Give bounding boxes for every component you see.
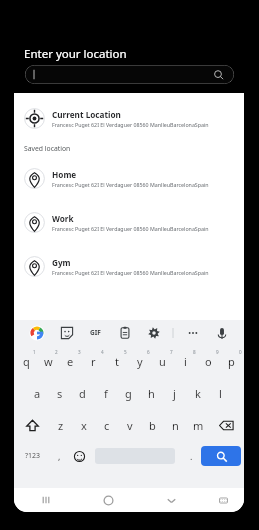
button[interactable]: Backspace [210, 412, 243, 438]
button[interactable]: Current Location [14, 102, 244, 134]
staticText: Saved location [24, 144, 71, 153]
staticText: 2 [55, 349, 58, 355]
button[interactable]: m [187, 412, 210, 438]
button[interactable]: r [82, 348, 105, 374]
button[interactable]: b [141, 412, 164, 438]
staticText: g [125, 386, 132, 401]
button[interactable]: Shift [15, 412, 49, 438]
button[interactable]: . [181, 444, 201, 468]
button[interactable]: Clipboard [110, 320, 139, 345]
staticText: n [172, 418, 179, 433]
button[interactable]: l [209, 380, 232, 406]
staticText: 5 [124, 349, 127, 355]
staticText: 0 [239, 349, 242, 355]
button[interactable]: u [151, 348, 174, 374]
button[interactable]: a [26, 380, 48, 406]
button[interactable]: k [186, 380, 209, 406]
button[interactable]: Voice input [207, 320, 236, 345]
staticText: j [173, 386, 176, 401]
button[interactable]: f [94, 380, 117, 406]
button[interactable]: More [178, 320, 207, 345]
staticText: Enter your location [24, 46, 127, 62]
button[interactable]: z [49, 412, 72, 438]
staticText: s [57, 386, 63, 401]
staticText: c [104, 418, 110, 433]
button[interactable]: ?123 [17, 444, 49, 468]
staticText: x [81, 418, 87, 433]
button[interactable]: g [117, 380, 140, 406]
staticText: u [159, 354, 166, 369]
staticText: w [44, 354, 53, 369]
staticText: Francesc Puget 62I El Verdaguer 08560 Ma… [52, 121, 209, 128]
button[interactable]: w [37, 348, 59, 374]
staticText: 9 [216, 349, 219, 355]
button[interactable]: Emoji [69, 444, 89, 468]
button[interactable]: v [118, 412, 141, 438]
button[interactable]: y [128, 348, 151, 374]
button[interactable]: d [71, 380, 94, 406]
button[interactable]: p [220, 348, 243, 374]
staticText: a [34, 386, 41, 401]
button[interactable]: Home [14, 162, 244, 194]
staticText: o [205, 354, 212, 369]
button[interactable]: Settings [139, 320, 168, 345]
button[interactable]: Home [77, 488, 140, 512]
staticText: Home [52, 169, 77, 180]
staticText: m [193, 418, 204, 433]
staticText: 3 [78, 349, 81, 355]
button[interactable]: h [140, 380, 163, 406]
staticText: 7 [170, 349, 173, 355]
staticText: 4 [101, 349, 104, 355]
staticText: p [228, 354, 235, 369]
button[interactable]: o [197, 348, 220, 374]
button[interactable]: , [49, 444, 69, 468]
button[interactable]: Emoji [52, 320, 81, 345]
staticText: l [219, 386, 222, 401]
staticText: Current Location [52, 109, 121, 120]
staticText: Work [52, 213, 74, 224]
button[interactable]: s [48, 380, 71, 406]
staticText: 1 [33, 349, 36, 355]
staticText: q [23, 354, 30, 369]
staticText: . [190, 450, 193, 462]
button[interactable]: Google [22, 320, 52, 345]
staticText: Gym [52, 257, 71, 268]
staticText: h [148, 386, 155, 401]
staticText: y [137, 354, 143, 369]
button[interactable]: c [95, 412, 118, 438]
button[interactable]: Work [14, 206, 244, 238]
button[interactable]: x [72, 412, 95, 438]
button[interactable]: t [105, 348, 128, 374]
staticText: v [127, 418, 133, 433]
staticText: Francesc Puget 62I El Verdaguer 08560 Ma… [52, 269, 209, 276]
staticText: d [79, 386, 86, 401]
button[interactable]: Recents [14, 488, 77, 512]
button[interactable]: q [15, 348, 37, 374]
button[interactable]: Gym [14, 250, 244, 282]
button[interactable]: Search [201, 446, 241, 466]
staticText: r [91, 354, 96, 369]
staticText: GIF [90, 328, 101, 337]
staticText: Francesc Puget 62I El Verdaguer 08560 Ma… [52, 181, 209, 188]
button[interactable]: GIF [81, 320, 110, 345]
staticText: f [104, 386, 108, 401]
staticText: t [115, 354, 119, 369]
staticText: , [58, 450, 61, 462]
staticText: k [195, 386, 201, 401]
staticText: 8 [193, 349, 196, 355]
button[interactable]: Hide keyboard [140, 488, 203, 512]
staticText: Francesc Puget 62I El Verdaguer 08560 Ma… [52, 225, 209, 232]
button[interactable]: n [164, 412, 187, 438]
staticText: 6 [147, 349, 150, 355]
staticText: i [184, 354, 187, 369]
button[interactable]: e [59, 348, 82, 374]
staticText: b [149, 418, 156, 433]
button[interactable] [25, 65, 234, 84]
button[interactable]: Switch keyboard [203, 488, 244, 512]
button[interactable]: j [163, 380, 186, 406]
staticText: z [58, 418, 64, 433]
staticText: e [67, 354, 74, 369]
staticText: ?123 [25, 451, 41, 461]
button[interactable]: i [174, 348, 197, 374]
